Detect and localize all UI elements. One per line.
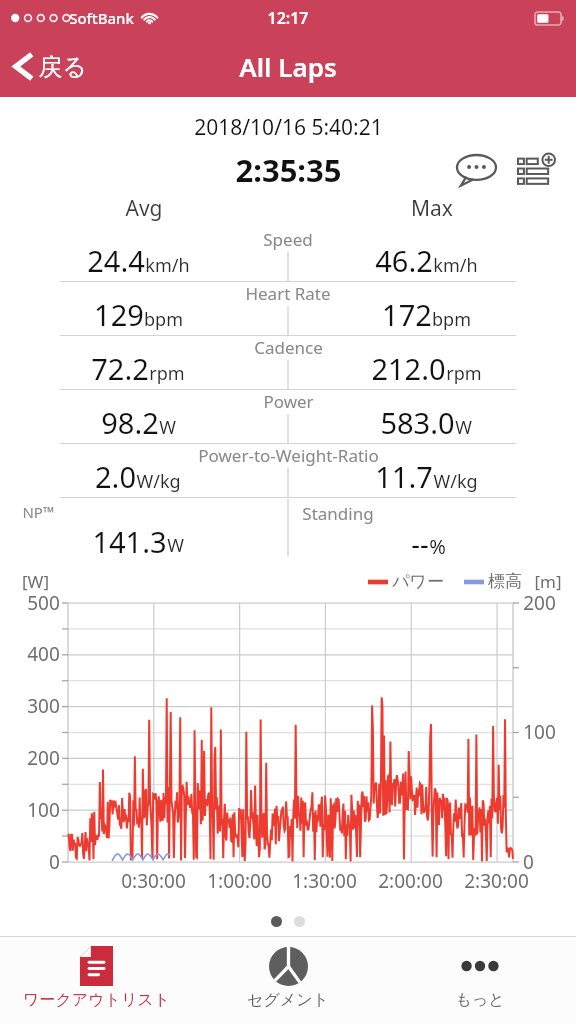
staticText: セグメント [247, 990, 329, 1010]
staticText: 11.7 [375, 457, 433, 496]
staticText: 戻る [38, 52, 87, 82]
staticText: 100 [27, 797, 60, 823]
staticText: Max [411, 194, 453, 223]
staticText: 72.2 [91, 349, 149, 388]
staticText: [m] [534, 570, 562, 593]
staticText: 200 [27, 745, 60, 771]
staticText: W [159, 415, 176, 440]
staticText: [W] [22, 570, 49, 593]
staticText: 標高 [488, 571, 522, 592]
button[interactable]: Power-to-Weight-Ratio [0, 444, 576, 498]
staticText: 172 [382, 295, 432, 334]
staticText: 24.4 [87, 241, 145, 280]
staticText: 129 [94, 295, 144, 334]
staticText: SoftBank [69, 8, 134, 28]
staticText: W [455, 415, 472, 440]
button[interactable]: Add lap [513, 149, 560, 192]
staticText: W [167, 533, 184, 558]
button[interactable]: もっと [384, 937, 576, 1024]
button[interactable]: ワークアウトリスト [0, 937, 192, 1024]
staticText: 583.0 [380, 403, 455, 442]
staticText: 300 [27, 693, 60, 719]
staticText: W/kg [136, 469, 181, 494]
staticText: Power-to-Weight-Ratio [198, 444, 379, 467]
staticText: 46.2 [375, 241, 433, 280]
staticText: bpm [144, 307, 183, 332]
staticText: 500 [27, 590, 60, 616]
staticText: 141.3 [92, 522, 167, 560]
button[interactable]: NP™ [0, 498, 576, 560]
button[interactable]: Power [0, 390, 576, 444]
staticText: bpm [432, 307, 471, 332]
button[interactable]: Comments [452, 150, 501, 191]
staticText: Speed [263, 228, 313, 251]
staticText: rpm [446, 361, 482, 386]
button[interactable]: Speed [0, 228, 576, 282]
staticText: 0 [49, 849, 60, 875]
button[interactable]: Cadence [0, 336, 576, 390]
staticText: km/h [433, 253, 478, 278]
staticText: 212.0 [371, 349, 446, 388]
staticText: パワー [392, 571, 444, 592]
staticText: All Laps [239, 49, 337, 84]
staticText: km/h [145, 253, 190, 278]
button[interactable]: Heart Rate [0, 282, 576, 336]
staticText: 200 [523, 590, 556, 616]
staticText: Standing [302, 502, 374, 525]
staticText: もっと [455, 990, 505, 1010]
staticText: ワークアウトリスト [23, 990, 170, 1010]
staticText: 2:30:00 [464, 868, 529, 894]
staticText: 400 [27, 641, 60, 667]
staticText: 0 [523, 849, 534, 875]
staticText: 12:17 [267, 7, 309, 29]
staticText: 1:30:00 [292, 868, 357, 894]
staticText: 0:30:00 [121, 868, 186, 894]
staticText: Avg [125, 194, 163, 223]
staticText: Cadence [254, 336, 323, 359]
staticText: 1:00:00 [207, 868, 272, 894]
staticText: 2018/10/16 5:40:21 [194, 113, 383, 142]
button[interactable]: 戻る [0, 43, 103, 90]
button[interactable]: セグメント [192, 937, 384, 1024]
staticText: 2:35:35 [235, 149, 342, 191]
staticText: 98.2 [101, 403, 159, 442]
staticText: NP™ [22, 502, 55, 522]
staticText: rpm [149, 361, 185, 386]
staticText: 100 [523, 719, 556, 745]
staticText: 2.0 [95, 457, 136, 496]
staticText: Heart Rate [245, 282, 331, 305]
staticText: -- [411, 525, 429, 560]
staticText: % [429, 533, 446, 560]
staticText: Power [263, 390, 314, 413]
staticText: 2:00:00 [378, 868, 443, 894]
staticText: W/kg [433, 469, 478, 494]
